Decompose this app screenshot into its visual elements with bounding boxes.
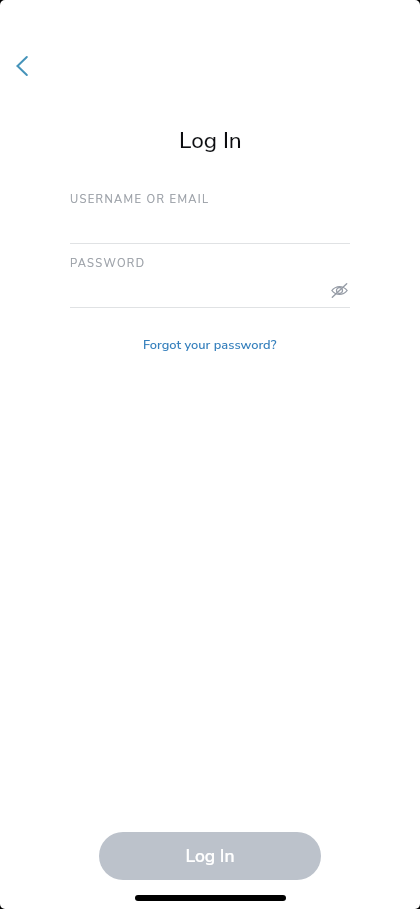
button[interactable]: Back	[6, 50, 38, 82]
staticText: Log In	[185, 844, 235, 868]
staticText: Log In	[179, 125, 242, 156]
button[interactable]: Log In	[99, 832, 321, 880]
staticText: Forgot your password?	[143, 336, 277, 353]
staticText: USERNAME OR EMAIL	[70, 192, 210, 207]
staticText: PASSWORD	[70, 256, 146, 271]
button[interactable]: PASSWORD	[70, 256, 350, 308]
button[interactable]: Show password	[327, 278, 352, 303]
button[interactable]: Forgot your password?	[139, 335, 281, 354]
button[interactable]: USERNAME OR EMAIL	[70, 192, 350, 244]
